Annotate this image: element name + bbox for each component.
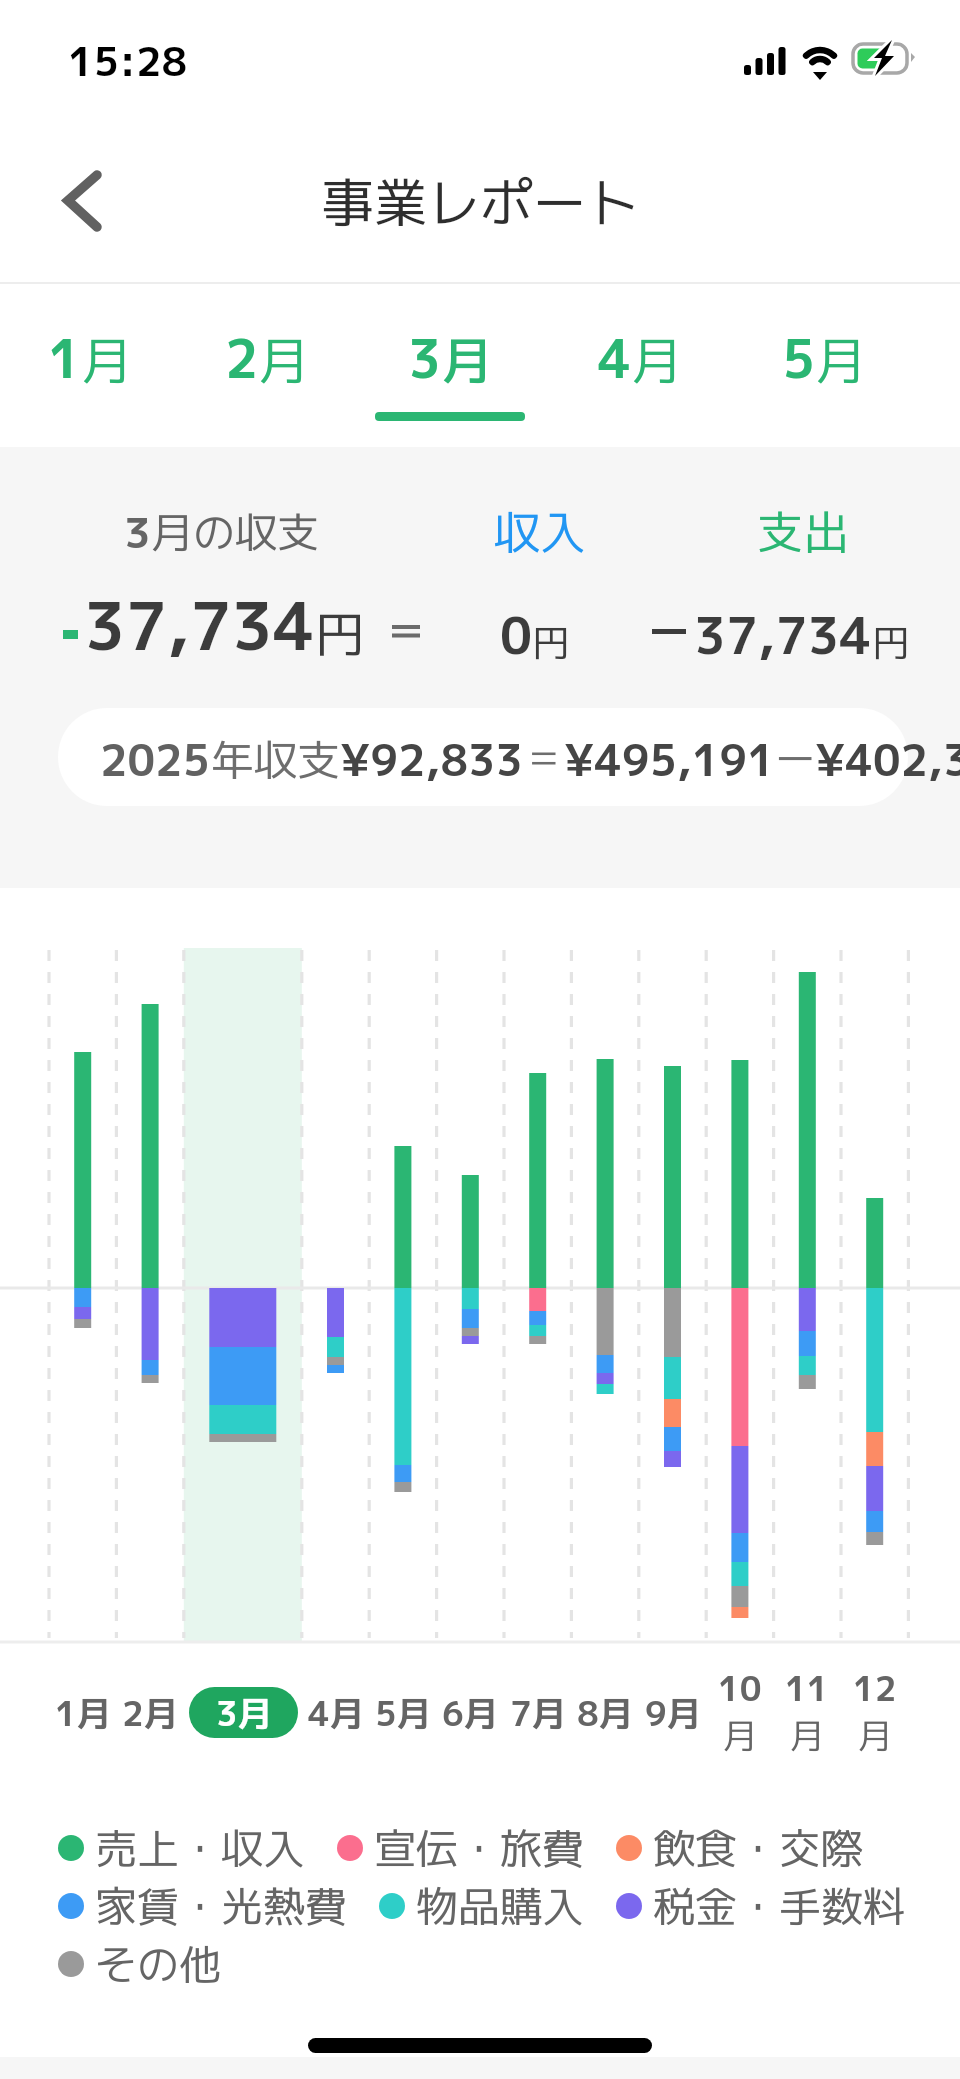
staticText: 月: [259, 325, 309, 395]
staticText: 6月: [442, 1689, 498, 1736]
button[interactable]: [58, 708, 908, 806]
staticText: 5月: [375, 1689, 431, 1736]
staticText: 3: [408, 322, 442, 395]
staticText: 宣伝・旅費: [374, 1819, 585, 1877]
staticText: 1月: [55, 1689, 111, 1736]
button[interactable]: 1月: [43, 1687, 123, 1738]
staticText: 7月: [510, 1689, 566, 1736]
staticText: 3月: [216, 1689, 272, 1736]
button[interactable]: 9月: [633, 1687, 713, 1738]
button[interactable]: 4: [552, 284, 728, 447]
button[interactable]: 飲食・交際: [616, 1819, 864, 1877]
button[interactable]: 宣伝・旅費: [337, 1819, 585, 1877]
button[interactable]: 売上・収入: [58, 1819, 306, 1877]
staticText: 4: [598, 322, 632, 395]
staticText: 円: [872, 616, 911, 669]
staticText: 月: [858, 1711, 892, 1758]
button[interactable]: 12: [835, 1664, 915, 1760]
button[interactable]: 3月: [189, 1687, 298, 1738]
staticText: 月: [632, 325, 682, 395]
staticText: 11: [785, 1664, 829, 1711]
staticText: 4月: [308, 1689, 364, 1736]
button[interactable]: 11: [767, 1664, 847, 1760]
staticText: 売上・収入: [95, 1819, 306, 1877]
staticText: 月: [442, 325, 492, 395]
staticText: 月: [723, 1711, 757, 1758]
button[interactable]: 2月: [110, 1687, 190, 1738]
staticText: ー: [775, 730, 815, 786]
staticText: 10: [718, 1664, 762, 1711]
button[interactable]: 8月: [565, 1687, 645, 1738]
staticText: ＝: [524, 730, 564, 786]
staticText: 月: [816, 325, 866, 395]
staticText: 2025: [100, 730, 211, 790]
staticText: 2: [225, 322, 259, 395]
staticText: 月: [790, 1711, 824, 1758]
button[interactable]: 2: [179, 284, 355, 447]
staticText: 事業レポート: [321, 165, 639, 239]
staticText: 物品購入: [416, 1877, 585, 1935]
staticText: ¥92,833: [340, 730, 524, 790]
staticText: 0: [500, 600, 532, 670]
button[interactable]: その他: [58, 1935, 222, 1993]
staticText: その他: [95, 1935, 222, 1993]
button[interactable]: 4月: [296, 1687, 376, 1738]
button[interactable]: 5月: [363, 1687, 443, 1738]
button[interactable]: 1: [2, 284, 178, 447]
button[interactable]: 3: [362, 284, 538, 447]
staticText: 月の収支: [151, 503, 320, 562]
staticText: 税金・手数料: [653, 1877, 906, 1935]
staticText: ¥402,358: [815, 730, 960, 790]
button[interactable]: 物品購入: [379, 1877, 585, 1935]
button[interactable]: 家賃・光熱費: [58, 1877, 348, 1935]
staticText: 円: [532, 616, 571, 669]
button[interactable]: 税金・手数料: [616, 1877, 906, 1935]
staticText: 15:28: [68, 33, 188, 89]
staticText: 年収支: [211, 730, 340, 790]
staticText: 8月: [577, 1689, 633, 1736]
staticText: 飲食・交際: [653, 1819, 864, 1877]
staticText: 37,734: [694, 600, 872, 670]
staticText: 収入: [494, 500, 586, 564]
staticText: 家賃・光熱費: [95, 1877, 348, 1935]
staticText: 支出: [757, 500, 849, 564]
staticText: 2月: [122, 1689, 178, 1736]
button[interactable]: Back: [26, 145, 136, 255]
staticText: 月: [82, 325, 132, 395]
staticText: 1: [48, 322, 82, 395]
staticText: ¥495,191: [564, 730, 775, 790]
staticText: 3: [124, 503, 151, 562]
button[interactable]: 5: [736, 284, 912, 447]
staticText: 9月: [645, 1689, 701, 1736]
button[interactable]: 7月: [498, 1687, 578, 1738]
staticText: 37,734: [84, 580, 315, 671]
staticText: 12: [853, 1664, 897, 1711]
staticText: 円: [315, 599, 365, 669]
button[interactable]: 10: [700, 1664, 780, 1760]
staticText: 5: [782, 322, 816, 395]
button[interactable]: 6月: [430, 1687, 510, 1738]
